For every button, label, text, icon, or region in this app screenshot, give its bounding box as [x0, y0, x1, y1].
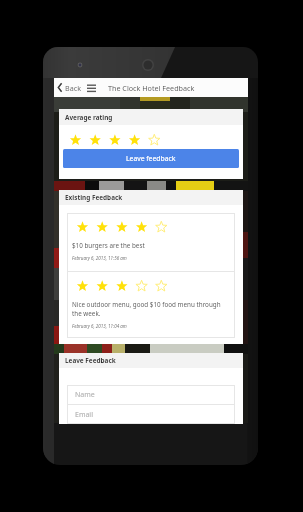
staticText: Average rating: [65, 113, 113, 122]
button[interactable]: Leave feedback: [63, 149, 239, 168]
staticText: Name: [75, 390, 95, 400]
staticText: Nice outdoor menu, good $10 food menu th…: [72, 300, 231, 318]
staticText: Leave feedback: [126, 154, 176, 163]
staticText: $10 burgers are the best: [72, 241, 145, 250]
staticText: Email: [75, 410, 93, 420]
button[interactable]: Name: [67, 385, 235, 404]
staticText: Back: [65, 83, 81, 93]
staticText: Existing Feedback: [65, 193, 123, 202]
button[interactable]: Email: [67, 405, 235, 424]
staticText: February 6, 2013, 11:04 am: [72, 323, 127, 329]
staticText: Leave Feedback: [65, 356, 116, 365]
staticText: The Clock Hotel Feedback: [108, 83, 195, 93]
button[interactable]: Menu: [84, 84, 99, 92]
staticText: February 6, 2013, 11:56 am: [72, 255, 127, 261]
button[interactable]: Back: [54, 82, 84, 93]
